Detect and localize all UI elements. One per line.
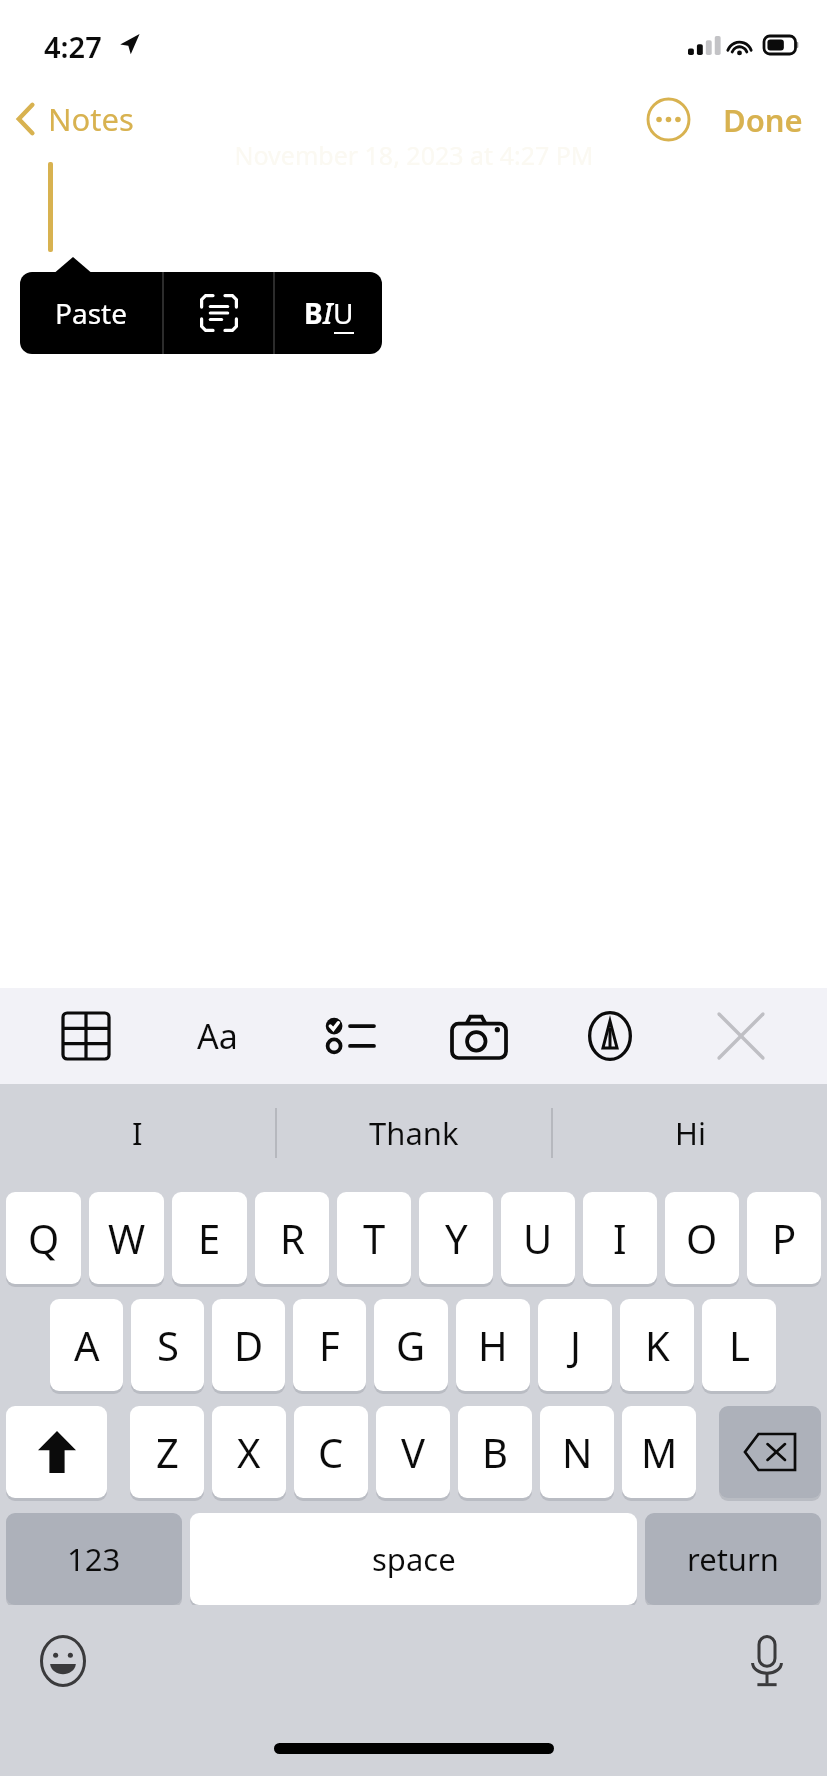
staticText: X bbox=[237, 1425, 261, 1479]
staticText: W bbox=[108, 1211, 146, 1265]
button[interactable]: Scan text bbox=[164, 272, 273, 354]
button[interactable]: S bbox=[131, 1299, 204, 1391]
staticText: Paste bbox=[55, 294, 127, 332]
staticText: K bbox=[645, 1318, 670, 1372]
staticText: P bbox=[772, 1211, 797, 1265]
staticText: U bbox=[523, 1211, 553, 1265]
staticText: S bbox=[157, 1318, 179, 1372]
staticText: U bbox=[333, 294, 354, 332]
staticText: Y bbox=[445, 1211, 468, 1265]
button[interactable]: Hi bbox=[553, 1084, 827, 1182]
button[interactable]: W bbox=[89, 1192, 164, 1284]
button[interactable]: Text format bbox=[172, 988, 262, 1084]
button[interactable]: space bbox=[190, 1513, 637, 1605]
staticText: Hi bbox=[675, 1112, 706, 1154]
staticText: Z bbox=[156, 1425, 179, 1479]
staticText: 123 bbox=[67, 1538, 121, 1580]
staticText: November 18, 2023 at 4:27 PM bbox=[234, 138, 594, 172]
staticText: N bbox=[562, 1425, 593, 1479]
button[interactable]: G bbox=[374, 1299, 448, 1391]
button[interactable]: K bbox=[620, 1299, 694, 1391]
button[interactable]: B bbox=[458, 1406, 532, 1498]
button[interactable]: F bbox=[293, 1299, 366, 1391]
button[interactable]: Emoji bbox=[32, 1627, 94, 1695]
button[interactable]: More options bbox=[636, 87, 701, 152]
button[interactable]: N bbox=[540, 1406, 614, 1498]
staticText: A bbox=[74, 1318, 100, 1372]
button[interactable]: Done bbox=[715, 91, 827, 149]
button[interactable]: Camera bbox=[434, 988, 524, 1084]
button[interactable]: Checklist bbox=[303, 988, 393, 1084]
staticText: L bbox=[729, 1318, 750, 1372]
button[interactable]: return bbox=[645, 1513, 821, 1605]
button[interactable]: J bbox=[538, 1299, 612, 1391]
button[interactable]: X bbox=[212, 1406, 286, 1498]
staticText: E bbox=[198, 1211, 221, 1265]
staticText: G bbox=[396, 1318, 426, 1372]
staticText: space bbox=[372, 1538, 456, 1580]
button[interactable]: M bbox=[622, 1406, 696, 1498]
button[interactable]: I bbox=[0, 1084, 275, 1182]
button[interactable]: Q bbox=[6, 1192, 81, 1284]
button[interactable]: V bbox=[376, 1406, 450, 1498]
button[interactable]: Insert table bbox=[41, 988, 131, 1084]
staticText: Q bbox=[28, 1211, 60, 1265]
staticText: H bbox=[478, 1318, 508, 1372]
staticText: Thank bbox=[369, 1112, 459, 1154]
staticText: Done bbox=[723, 99, 803, 141]
button[interactable]: R bbox=[255, 1192, 329, 1284]
staticText: C bbox=[318, 1425, 344, 1479]
button[interactable]: D bbox=[212, 1299, 285, 1391]
staticText: I bbox=[613, 1211, 627, 1265]
button[interactable]: L bbox=[702, 1299, 776, 1391]
button[interactable]: Backspace bbox=[719, 1406, 821, 1498]
staticText: return bbox=[687, 1538, 779, 1580]
staticText: 4:27 bbox=[44, 27, 102, 66]
button[interactable]: 123 bbox=[6, 1513, 182, 1605]
staticText: D bbox=[234, 1318, 264, 1372]
button[interactable]: B bbox=[275, 272, 382, 354]
button[interactable]: Paste bbox=[20, 272, 162, 354]
staticText: T bbox=[363, 1211, 386, 1265]
staticText: J bbox=[570, 1318, 581, 1372]
button[interactable]: U bbox=[501, 1192, 575, 1284]
staticText: I bbox=[323, 294, 333, 332]
button[interactable]: P bbox=[747, 1192, 821, 1284]
button[interactable]: C bbox=[294, 1406, 368, 1498]
button[interactable]: Dictate bbox=[739, 1627, 795, 1697]
staticText: B bbox=[482, 1425, 508, 1479]
staticText: R bbox=[280, 1211, 305, 1265]
button[interactable]: Shift bbox=[6, 1406, 107, 1498]
button[interactable]: T bbox=[337, 1192, 411, 1284]
button[interactable]: Notes bbox=[0, 92, 146, 146]
button[interactable]: Y bbox=[419, 1192, 493, 1284]
button[interactable]: Close keyboard bbox=[696, 988, 786, 1084]
staticText: O bbox=[686, 1211, 718, 1265]
staticText: F bbox=[319, 1318, 340, 1372]
button[interactable]: O bbox=[665, 1192, 739, 1284]
button[interactable]: Markup bbox=[565, 988, 655, 1084]
button[interactable]: A bbox=[50, 1299, 123, 1391]
staticText: V bbox=[401, 1425, 425, 1479]
staticText: B bbox=[304, 294, 323, 332]
button[interactable]: Thank bbox=[277, 1084, 551, 1182]
staticText: Aa bbox=[197, 1013, 238, 1059]
button[interactable]: Z bbox=[130, 1406, 204, 1498]
staticText: Notes bbox=[48, 98, 134, 140]
button[interactable]: H bbox=[456, 1299, 530, 1391]
button[interactable]: I bbox=[583, 1192, 657, 1284]
staticText: M bbox=[641, 1425, 678, 1479]
staticText: I bbox=[132, 1112, 143, 1154]
button[interactable]: E bbox=[172, 1192, 247, 1284]
